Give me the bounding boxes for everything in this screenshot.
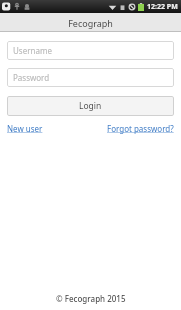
- staticText: Fecograph: [68, 17, 113, 29]
- staticText: Login: [79, 100, 102, 112]
- staticText: Username: [13, 45, 52, 56]
- staticText: Password: [13, 72, 50, 83]
- button[interactable]: Password: [7, 68, 174, 87]
- button[interactable]: Login: [7, 96, 174, 116]
- button[interactable]: Username: [7, 41, 174, 60]
- staticText: © Fecograph 2015: [56, 293, 126, 304]
- button[interactable]: Forgot password?: [107, 121, 174, 136]
- staticText: 12:22 PM: [147, 2, 178, 12]
- staticText: Forgot password?: [107, 123, 174, 134]
- button[interactable]: New user: [7, 121, 43, 136]
- staticText: New user: [7, 123, 43, 134]
